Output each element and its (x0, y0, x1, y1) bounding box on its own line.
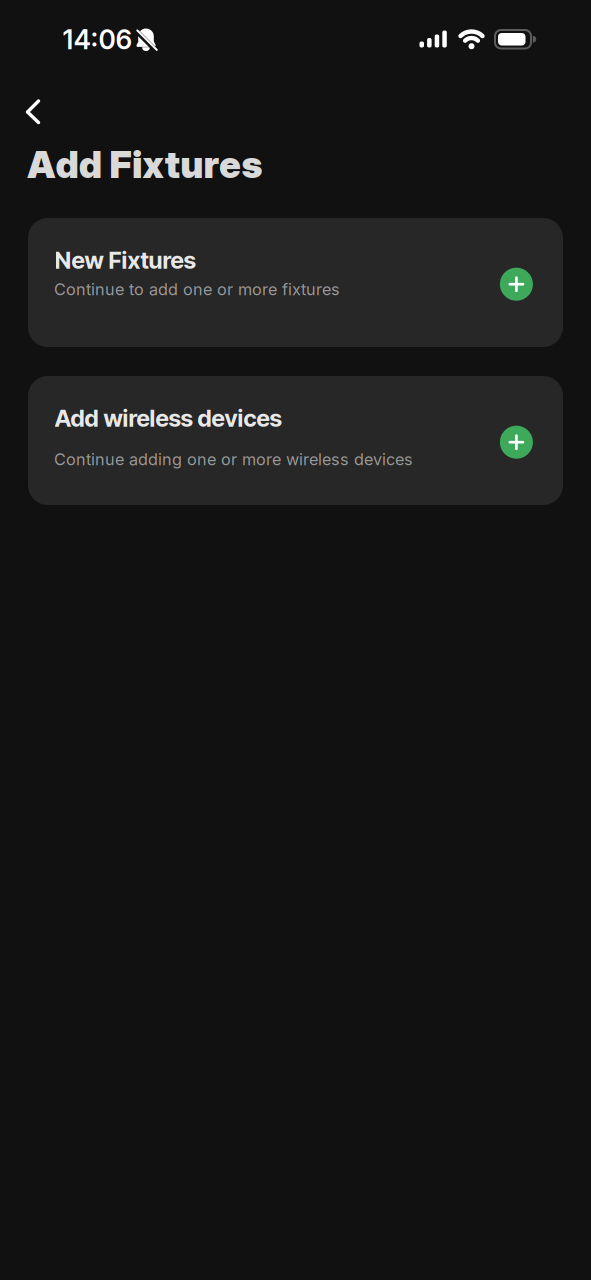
button[interactable]: Add wireless devices (28, 376, 563, 505)
staticText: Continue to add one or more fixtures (54, 279, 340, 299)
staticText: New Fixtures (54, 246, 195, 275)
staticText: 14:06 (62, 23, 132, 56)
staticText: Add wireless devices (54, 404, 281, 433)
button[interactable]: Back (14, 95, 54, 135)
staticText: Continue adding one or more wireless dev… (54, 449, 413, 469)
staticText: Add Fixtures (27, 142, 262, 187)
button[interactable]: New Fixtures (28, 218, 563, 347)
